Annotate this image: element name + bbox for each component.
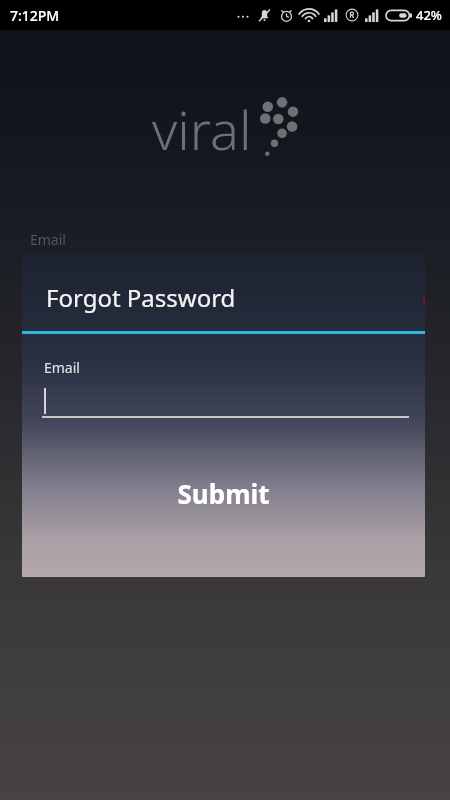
staticText: Email xyxy=(44,358,80,377)
staticText: viral xyxy=(152,92,252,166)
staticText: Email xyxy=(30,230,66,249)
staticText: 7:12PM xyxy=(10,6,60,25)
button[interactable]: Submit xyxy=(22,453,425,533)
staticText: Forgot Password xyxy=(46,281,236,314)
staticText: Submit xyxy=(177,476,270,511)
staticText: 42% xyxy=(416,6,442,24)
